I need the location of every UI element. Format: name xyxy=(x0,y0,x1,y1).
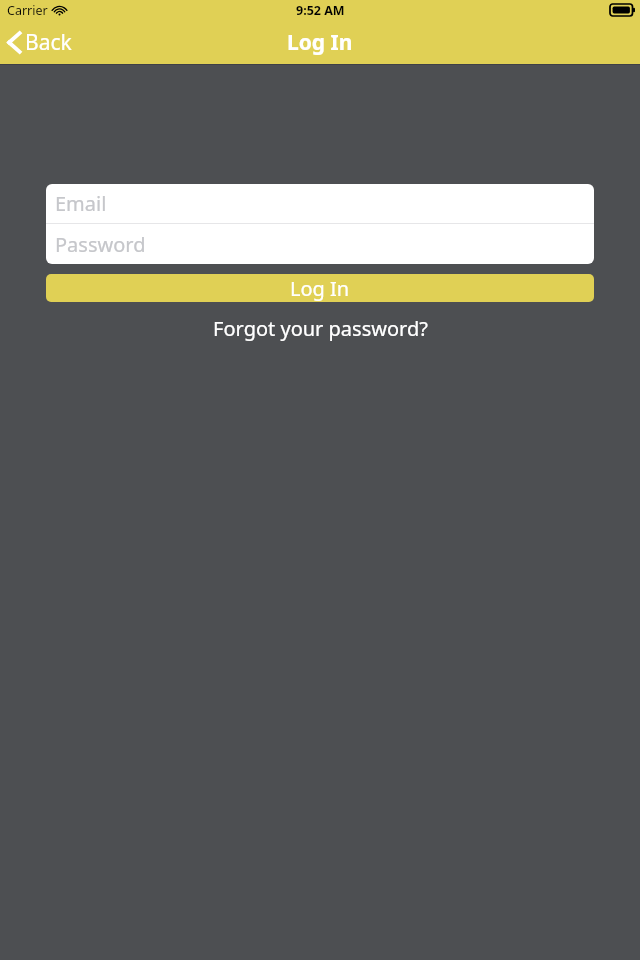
staticText: Password xyxy=(55,231,146,258)
staticText: Log In xyxy=(287,28,353,57)
button[interactable]: Back xyxy=(0,24,82,61)
staticText: 9:52 AM xyxy=(296,2,345,19)
button[interactable]: Email xyxy=(46,184,594,223)
button[interactable]: Forgot your password? xyxy=(205,312,436,345)
staticText: Email xyxy=(55,190,107,217)
staticText: Forgot your password? xyxy=(213,315,428,342)
button[interactable]: Log In xyxy=(46,274,594,302)
staticText: Carrier xyxy=(7,2,48,19)
button[interactable]: Password xyxy=(46,224,594,264)
staticText: Back xyxy=(25,28,72,57)
staticText: Log In xyxy=(290,275,350,302)
